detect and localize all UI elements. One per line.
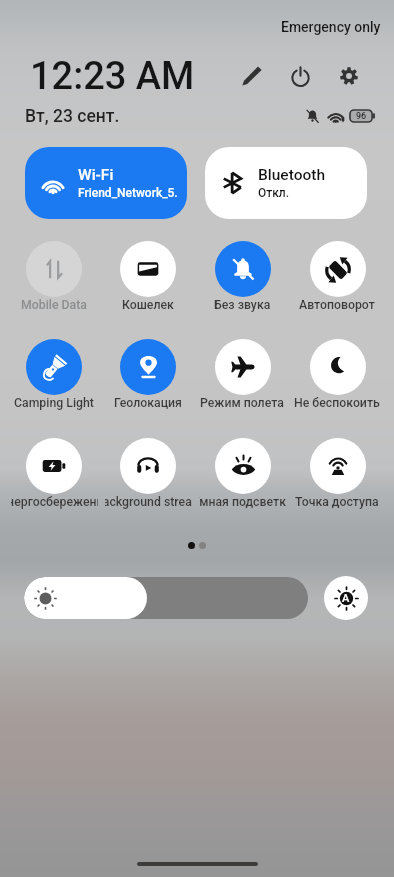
staticText: Friend_Network_5.. (78, 186, 181, 200)
button[interactable]: Camping Light (7, 339, 101, 412)
staticText: Не беспокоить (294, 396, 380, 410)
staticText: Wi-Fi (78, 166, 114, 184)
button[interactable]: Геолокация (101, 339, 195, 412)
button[interactable]: Background stream (101, 438, 195, 511)
button[interactable]: Режим полета (195, 339, 290, 412)
staticText: 12:23 AM (30, 54, 195, 99)
staticText: Откл. (258, 186, 290, 200)
staticText: Режим полета (200, 396, 284, 410)
button[interactable]: Энергосбережение (7, 438, 101, 511)
staticText: A (342, 592, 350, 605)
staticText: Энергосбережение (11, 495, 98, 509)
button[interactable]: Автоповорот (290, 241, 385, 314)
staticText: Background stream (105, 495, 192, 509)
staticText: Умная подсветка (199, 495, 286, 509)
button[interactable]: Wi-Fi (25, 147, 187, 219)
button[interactable]: Auto brightness (324, 576, 368, 620)
button[interactable]: Без звука (195, 241, 290, 314)
staticText: Кошелек (122, 298, 174, 312)
button[interactable]: Mobile Data (7, 241, 101, 314)
staticText: Mobile Data (21, 298, 87, 312)
button[interactable]: Умная подсветка (195, 438, 290, 511)
button[interactable]: Power (285, 61, 315, 91)
staticText: Вт, 23 сент. (25, 106, 120, 127)
button[interactable]: Bluetooth (205, 147, 367, 219)
button[interactable]: Settings (334, 61, 364, 91)
staticText: Camping Light (14, 396, 94, 410)
button[interactable]: Точка доступа (290, 438, 385, 511)
staticText: Без звука (214, 298, 271, 312)
staticText: Bluetooth (258, 166, 326, 184)
staticText: Точка доступа (295, 495, 379, 509)
button[interactable]: Кошелек (101, 241, 195, 314)
staticText: Автоповорот (299, 298, 375, 312)
staticText: Emergency only (281, 19, 381, 35)
button[interactable]: Brightness (24, 577, 308, 619)
button[interactable]: Edit (237, 61, 267, 91)
button[interactable]: Не беспокоить (290, 339, 385, 412)
staticText: Геолокация (114, 396, 182, 410)
staticText: 96 (356, 111, 367, 122)
